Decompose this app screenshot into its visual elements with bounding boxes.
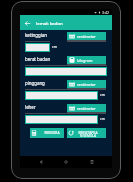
- button[interactable]: sentimeter: [67, 32, 106, 40]
- staticText: leher: [25, 104, 36, 110]
- staticText: cm: [100, 116, 105, 121]
- button[interactable]: MENGIRA: [30, 128, 64, 138]
- staticText: sentimeter: [77, 106, 96, 111]
- button[interactable]: [25, 91, 98, 100]
- button[interactable]: Back: [36, 157, 46, 167]
- staticText: cm: [100, 92, 105, 97]
- staticText: ketinggian: [25, 32, 47, 38]
- button[interactable]: Home: [61, 157, 71, 167]
- staticText: cm: [52, 44, 57, 49]
- button[interactable]: Recents: [87, 157, 97, 167]
- button[interactable]: [25, 43, 50, 52]
- button[interactable]: Back: [23, 19, 31, 27]
- button[interactable]: sentimeter: [67, 104, 106, 112]
- staticText: MENETAPKA N SEMULA: [78, 130, 98, 138]
- staticText: kilogram: [77, 58, 93, 63]
- staticText: MENGIRA: [44, 130, 60, 134]
- staticText: lemak badan: [36, 20, 63, 26]
- button[interactable]: MENETAPKA N SEMULA: [67, 128, 106, 138]
- button[interactable]: [25, 67, 107, 76]
- button[interactable]: [25, 115, 98, 124]
- staticText: 3:42: [102, 10, 110, 15]
- staticText: sentimeter: [77, 82, 96, 87]
- button[interactable]: sentimeter: [67, 80, 106, 88]
- staticText: berat badan: [25, 56, 51, 62]
- button[interactable]: kilogram: [67, 56, 106, 64]
- staticText: pinggang: [25, 80, 45, 86]
- staticText: sentimeter: [77, 34, 96, 39]
